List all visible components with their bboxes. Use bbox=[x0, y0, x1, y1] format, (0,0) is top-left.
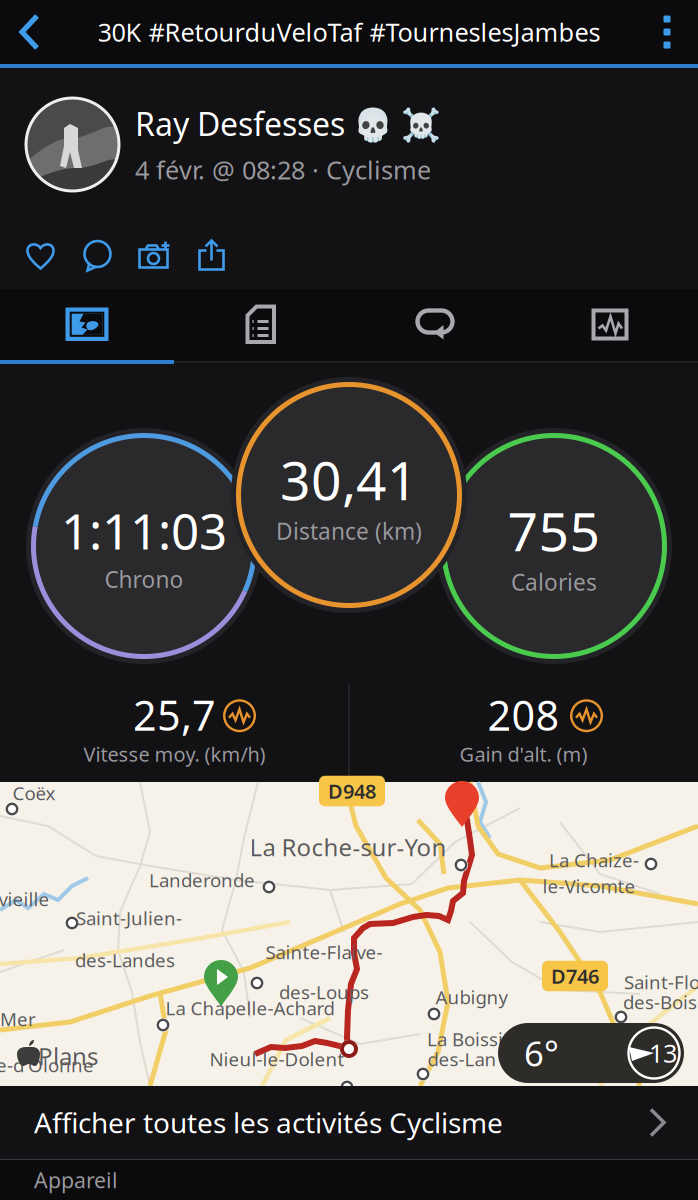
staticText: des-Landes bbox=[75, 948, 175, 972]
staticText: 30,41 bbox=[280, 444, 418, 515]
staticText: La Chaize- bbox=[549, 848, 639, 872]
staticText: 4 févr. @ 08:28 · Cyclisme bbox=[135, 153, 431, 186]
staticText: des-Loups bbox=[279, 980, 369, 1004]
staticText: Landeronde bbox=[149, 868, 255, 892]
button[interactable]: Map bbox=[0, 289, 174, 360]
staticText: Aubigny bbox=[435, 985, 508, 1009]
staticText: Chrono bbox=[104, 564, 183, 594]
staticText: 6° bbox=[524, 1030, 559, 1076]
staticText: 13 bbox=[649, 1036, 677, 1070]
staticText: Sainte-Flaive- bbox=[265, 940, 382, 964]
staticText: D948 bbox=[328, 778, 376, 804]
staticText: D746 bbox=[551, 963, 599, 989]
staticText: e-d'Olonne bbox=[0, 1053, 94, 1077]
staticText: des-Bois bbox=[623, 990, 697, 1014]
staticText: Plans bbox=[38, 1040, 98, 1072]
button[interactable]: Comment bbox=[69, 221, 126, 289]
staticText: La Chapelle-Achard bbox=[165, 996, 334, 1020]
staticText: Appareil bbox=[34, 1166, 118, 1194]
button[interactable]: Back bbox=[0, 0, 81, 64]
staticText: Saint-Flo bbox=[624, 970, 698, 994]
staticText: 30K #RetourduVeloTaf #TourneslesJambes bbox=[97, 15, 600, 49]
staticText: Saint-Julien- bbox=[76, 906, 182, 930]
staticText: Mer bbox=[0, 1007, 36, 1031]
staticText: Ray Desfesses 💀 ☠️ bbox=[135, 102, 441, 145]
staticText: La Boissi bbox=[427, 1027, 503, 1051]
button[interactable]: Analysis bbox=[522, 289, 698, 360]
button[interactable]: Laps bbox=[348, 289, 522, 360]
staticText: Afficher toutes les activités Cyclisme bbox=[34, 1104, 503, 1141]
button[interactable]: Afficher toutes les activités Cyclisme bbox=[0, 1086, 698, 1159]
staticText: 755 bbox=[507, 495, 600, 566]
staticText: le-Vicomte bbox=[542, 874, 635, 898]
staticText: Gain d'alt. (m) bbox=[459, 741, 587, 767]
button[interactable]: More options bbox=[636, 0, 698, 64]
staticText: des-Lan bbox=[427, 1047, 496, 1071]
staticText: 25,7 bbox=[133, 687, 216, 742]
staticText: Calories bbox=[511, 567, 597, 597]
button[interactable]: Add photo bbox=[126, 221, 183, 289]
staticText: Distance (km) bbox=[276, 516, 422, 546]
staticText: Nieul-le-Dolent bbox=[209, 1047, 344, 1071]
staticText: 1:11:03 bbox=[61, 498, 227, 563]
staticText: Vitesse moy. (km/h) bbox=[83, 741, 265, 767]
staticText: La Roche-sur-Yon bbox=[249, 831, 446, 863]
button[interactable]: Details bbox=[174, 289, 348, 360]
staticText: Coëx bbox=[12, 781, 55, 805]
button[interactable]: Share bbox=[183, 221, 240, 289]
staticText: vieille bbox=[0, 887, 49, 911]
staticText: 208 bbox=[487, 687, 559, 742]
button[interactable]: Like bbox=[12, 221, 69, 289]
